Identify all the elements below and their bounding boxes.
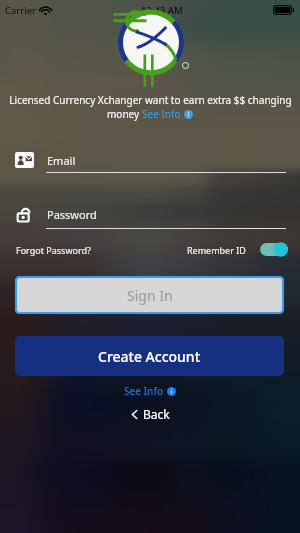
staticText: Licensed Currency Xchanger want to earn …	[9, 93, 292, 107]
staticText: Email	[47, 153, 76, 168]
staticText: Back	[143, 406, 170, 422]
button[interactable]: Sign In	[15, 276, 284, 314]
button[interactable]: Remember ID	[260, 243, 286, 256]
button[interactable]: See Info	[124, 384, 176, 398]
staticText: Carrier	[5, 4, 36, 17]
button[interactable]: Back	[131, 406, 170, 422]
staticText: See Info	[142, 107, 181, 121]
staticText: Sign In	[127, 286, 173, 305]
button[interactable]: See Info	[142, 107, 193, 121]
staticText: Remember ID	[187, 244, 246, 256]
button[interactable]: Forgot Password?	[16, 244, 91, 256]
staticText: See Info	[124, 384, 164, 398]
staticText: 12:43 AM	[141, 4, 183, 17]
button[interactable]: Create Account	[15, 336, 284, 376]
staticText: Password	[47, 207, 97, 222]
staticText: Create Account	[98, 347, 201, 366]
staticText: money	[107, 107, 142, 121]
